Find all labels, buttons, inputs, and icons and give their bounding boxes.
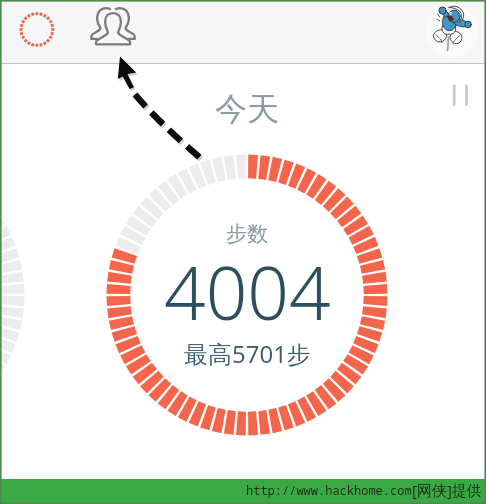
staticText: http://www.hackhome.com bbox=[246, 482, 412, 498]
button[interactable]: Friends bbox=[84, 4, 140, 54]
staticText: [网侠]提供 bbox=[412, 480, 482, 500]
button[interactable]: Profile bbox=[425, 4, 478, 57]
staticText: 最高5701步 bbox=[184, 337, 311, 370]
staticText: 今天 bbox=[215, 89, 279, 129]
button[interactable]: Pause bbox=[440, 76, 480, 116]
button[interactable]: Activity ring bbox=[15, 8, 60, 53]
staticText: 4004 bbox=[164, 242, 331, 341]
staticText: 步数 bbox=[226, 221, 268, 247]
